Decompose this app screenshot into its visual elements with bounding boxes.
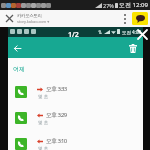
button[interactable]: Close: [0, 10, 18, 27]
staticText: 1/2: [68, 30, 79, 40]
button[interactable]: Delete: [125, 40, 141, 56]
staticText: 오전 12:09: [119, 1, 148, 9]
staticText: 27%: [103, 2, 114, 9]
staticText: 몇 초: [38, 145, 49, 150]
button[interactable]: Remove attachment: [136, 28, 148, 40]
button[interactable]: 오후 3:33: [8, 79, 143, 105]
button[interactable]: Back: [8, 39, 26, 57]
staticText: 오전 4:08: [122, 29, 141, 35]
staticText: ⇅: [98, 29, 103, 35]
staticText: 어제: [13, 65, 25, 73]
button[interactable]: KakaoTalk: [132, 12, 148, 25]
staticText: story.kakao.com ▾: [17, 19, 50, 24]
staticText: 몇 초: [38, 93, 49, 99]
staticText: 오후 3:29: [46, 111, 67, 119]
staticText: 카카오스토리: [17, 13, 42, 19]
button[interactable]: 오후 3:10: [8, 131, 143, 150]
button[interactable]: More options: [118, 10, 132, 27]
button[interactable]: 오후 3:29: [8, 105, 143, 131]
staticText: 오후 3:10: [46, 137, 67, 145]
staticText: 몇 초: [38, 119, 49, 125]
staticText: 오후 3:33: [46, 85, 67, 93]
